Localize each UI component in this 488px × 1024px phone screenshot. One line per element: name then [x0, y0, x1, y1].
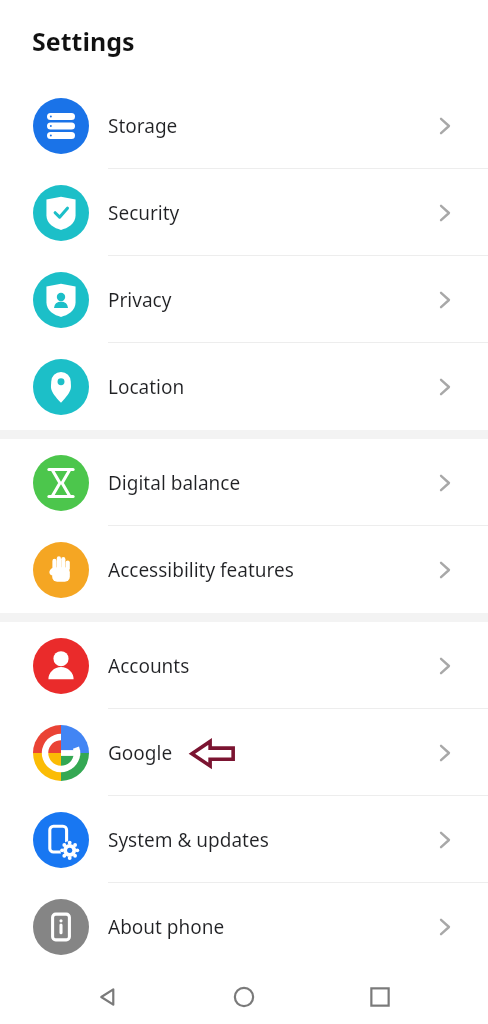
button[interactable]: Digital balance: [0, 439, 488, 526]
button[interactable]: Accounts: [0, 622, 488, 709]
button[interactable]: Privacy: [0, 256, 488, 343]
button[interactable]: System & updates: [0, 796, 488, 883]
staticText: About phone: [108, 914, 225, 940]
staticText: Accessibility features: [108, 557, 294, 583]
staticText: System & updates: [108, 827, 269, 853]
staticText: Privacy: [108, 287, 172, 313]
staticText: Security: [108, 200, 180, 226]
button[interactable]: Recent apps: [352, 970, 408, 1024]
button[interactable]: About phone: [0, 883, 488, 970]
button[interactable]: Storage: [0, 82, 488, 169]
staticText: Settings: [32, 24, 135, 58]
button[interactable]: Home: [216, 970, 272, 1024]
button[interactable]: Back: [80, 970, 136, 1024]
button[interactable]: Location: [0, 343, 488, 430]
button[interactable]: Security: [0, 169, 488, 256]
button[interactable]: Google: [0, 709, 488, 796]
staticText: Google: [108, 740, 173, 766]
staticText: Digital balance: [108, 470, 241, 496]
button[interactable]: Accessibility features: [0, 526, 488, 613]
staticText: Location: [108, 374, 185, 400]
staticText: Accounts: [108, 653, 190, 679]
staticText: Storage: [108, 113, 178, 139]
